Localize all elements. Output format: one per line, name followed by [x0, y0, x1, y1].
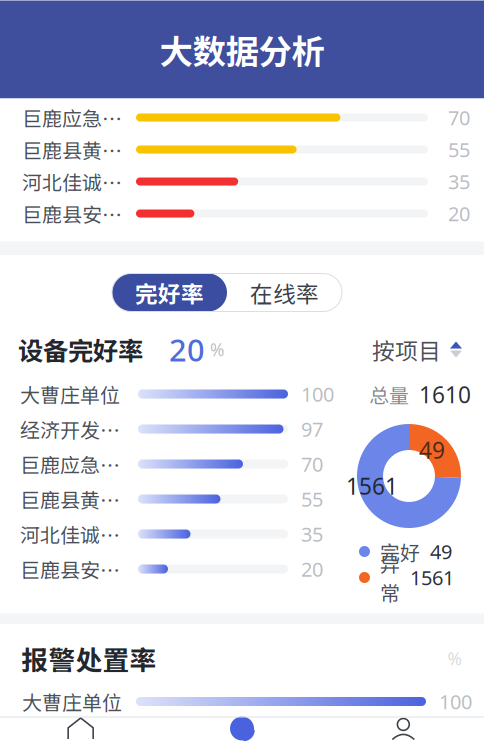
- staticText: 大曹庄单位: [20, 379, 120, 408]
- staticText: 完好率: [135, 276, 204, 309]
- staticText: 49: [430, 538, 452, 565]
- button[interactable]: 我的: [323, 716, 484, 740]
- staticText: %: [447, 647, 461, 670]
- staticText: 按项目: [372, 333, 441, 366]
- staticText: 巨鹿应急管…: [22, 103, 136, 132]
- staticText: 55: [448, 136, 470, 163]
- staticText: 70: [301, 450, 323, 478]
- staticText: 35: [448, 168, 470, 195]
- staticText: 在线率: [250, 276, 319, 309]
- staticText: 巨鹿县安通…: [22, 199, 136, 228]
- staticText: 大数据分析: [159, 25, 324, 74]
- staticText: 巨鹿县安通…: [20, 554, 138, 583]
- staticText: 100: [301, 380, 334, 408]
- staticText: 49: [419, 435, 445, 465]
- button[interactable]: 统计: [161, 716, 323, 740]
- staticText: 经济开发单…: [20, 414, 138, 443]
- staticText: 总量: [369, 380, 409, 409]
- staticText: 完好: [380, 537, 420, 566]
- button[interactable]: 按项目: [372, 333, 462, 366]
- staticText: 巨鹿应急管…: [20, 449, 138, 478]
- staticText: 河北佳诚集…: [22, 167, 136, 196]
- button[interactable]: 在线率: [227, 273, 342, 311]
- staticText: 巨鹿县黄金…: [22, 135, 136, 164]
- staticText: 异常: [380, 548, 400, 606]
- staticText: 35: [301, 520, 323, 548]
- staticText: 河北佳诚集…: [20, 519, 138, 548]
- staticText: 97: [301, 415, 323, 443]
- staticText: 100: [439, 688, 472, 715]
- staticText: 1561: [410, 564, 454, 591]
- staticText: 1610: [419, 379, 471, 410]
- staticText: 巨鹿县黄金…: [20, 484, 138, 513]
- staticText: 报警处置率: [21, 639, 156, 678]
- staticText: 20: [301, 555, 323, 583]
- staticText: 大曹庄单位: [22, 687, 122, 716]
- staticText: 20: [169, 329, 205, 370]
- staticText: 设备完好率: [18, 331, 143, 368]
- staticText: 55: [301, 485, 323, 513]
- staticText: 70: [448, 104, 470, 131]
- staticText: %: [210, 338, 224, 361]
- button[interactable]: 首页: [0, 716, 161, 740]
- staticText: 20: [448, 200, 470, 227]
- button[interactable]: 完好率: [112, 273, 227, 311]
- staticText: 1561: [346, 471, 398, 501]
